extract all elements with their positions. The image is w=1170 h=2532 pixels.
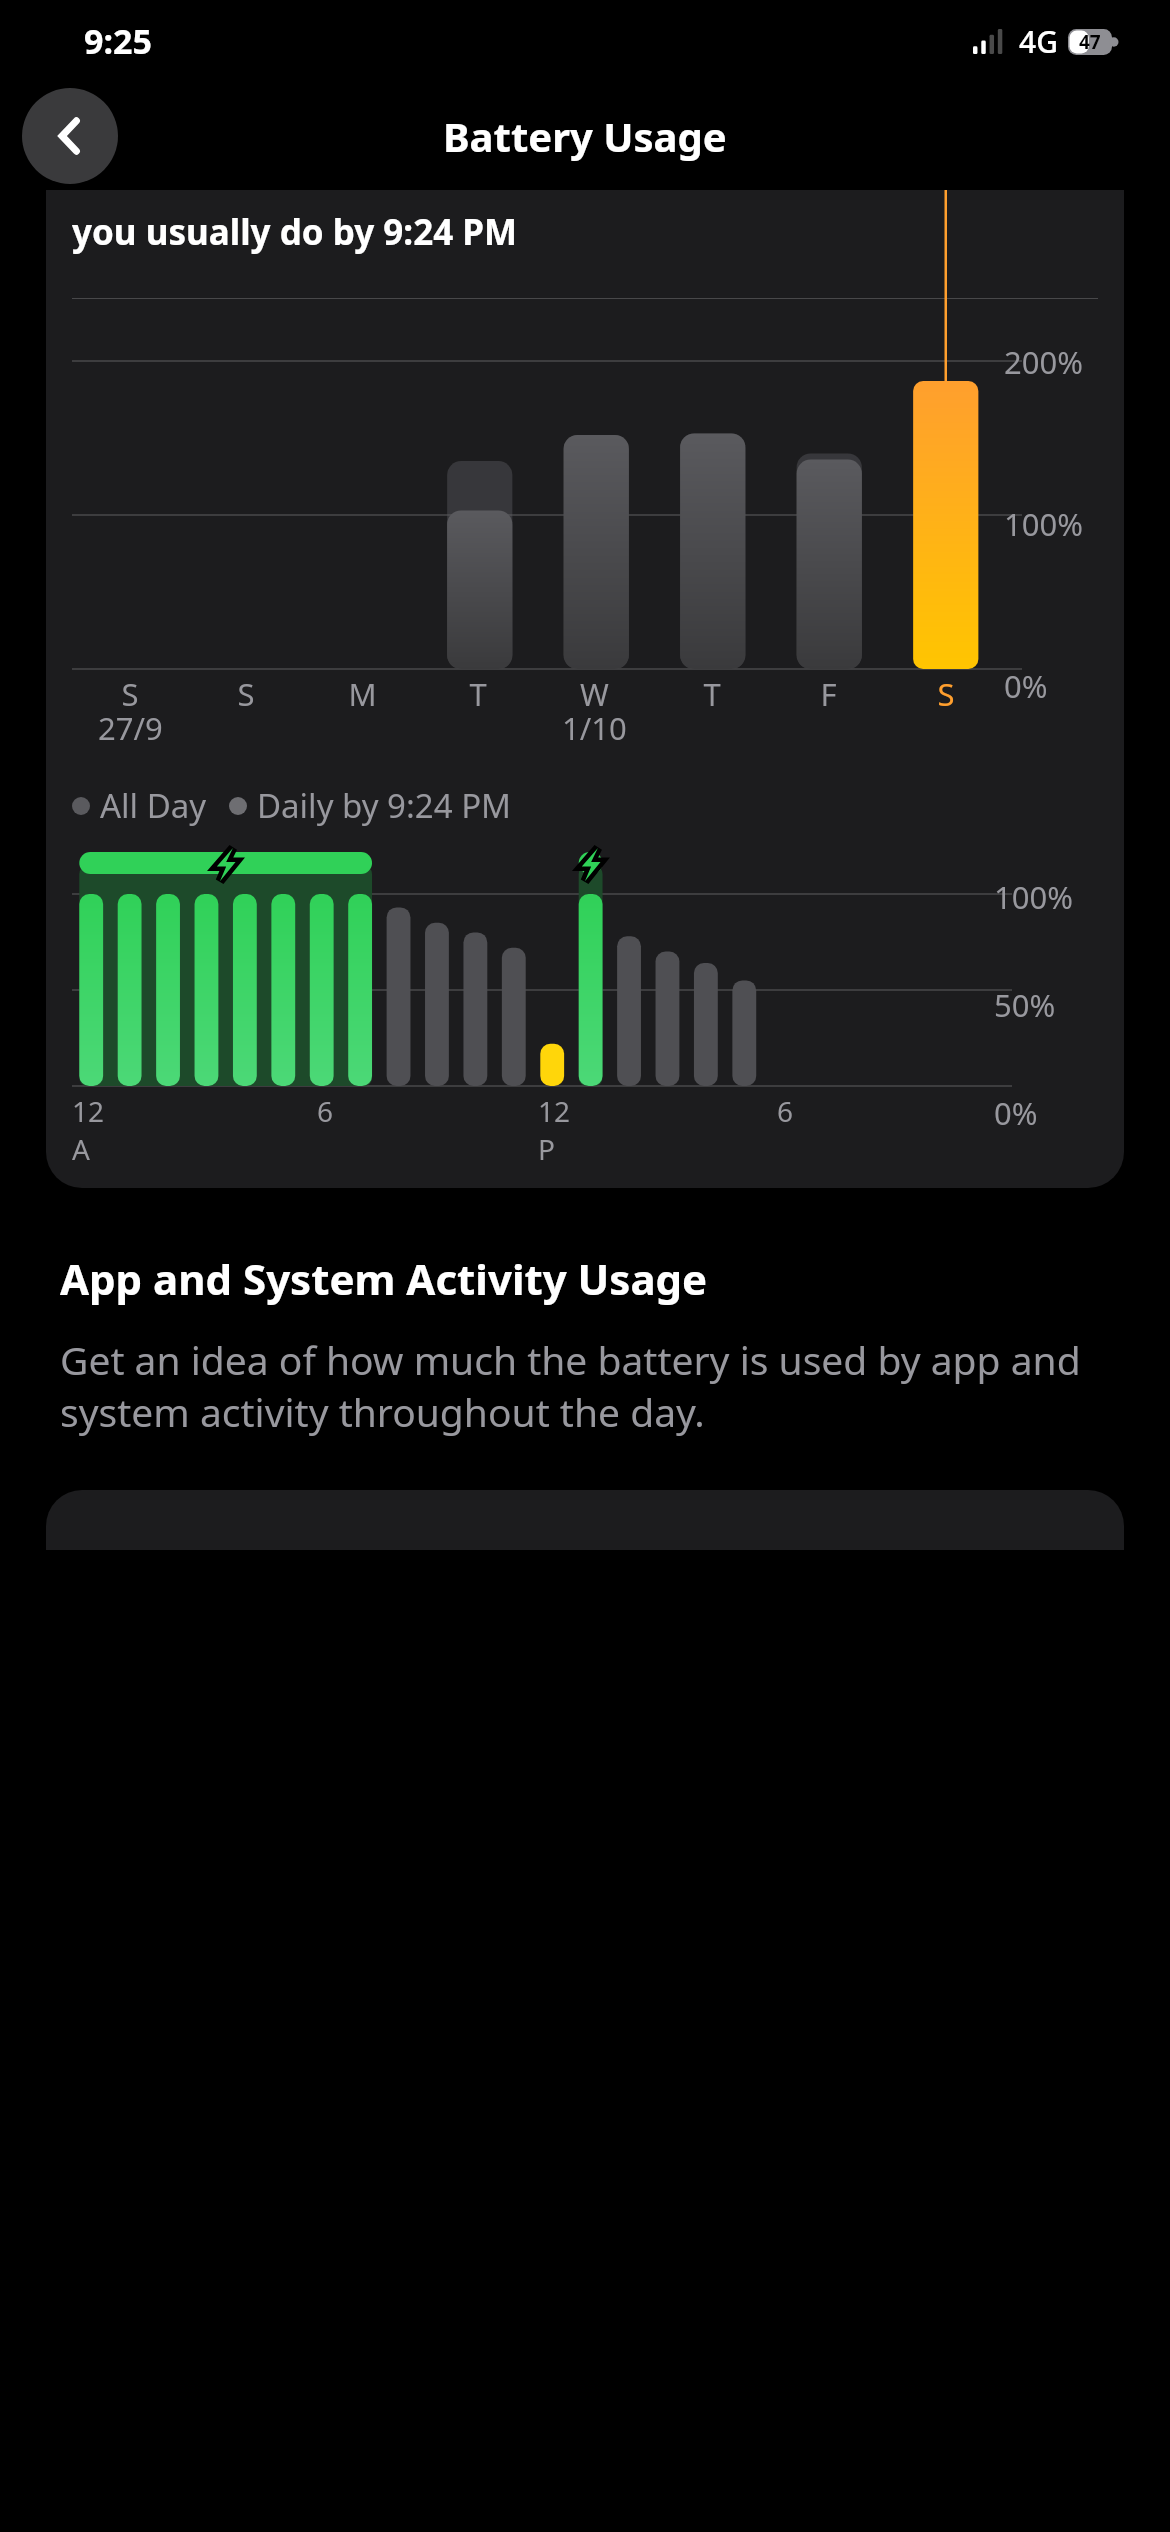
staticText: F	[820, 673, 837, 715]
staticText: 47	[1079, 29, 1101, 55]
staticText: 200%	[1004, 341, 1083, 383]
staticText: 50%	[994, 984, 1056, 1026]
staticText: 100%	[994, 876, 1073, 918]
staticText: 27/9	[98, 707, 163, 749]
staticText: S	[121, 673, 139, 715]
staticText: 100%	[1004, 503, 1083, 545]
staticText: 9:25	[84, 18, 152, 64]
staticText: S	[237, 673, 255, 715]
staticText: 6	[317, 1092, 334, 1130]
staticText: 6	[777, 1092, 794, 1130]
staticText: Get an idea of how much the battery is u…	[60, 1333, 1110, 1438]
staticText: T	[469, 673, 487, 715]
staticText: All Day	[100, 783, 207, 828]
staticText: W	[580, 673, 609, 715]
staticText: 12 P	[538, 1092, 576, 1168]
staticText: 4G	[1019, 21, 1058, 62]
button[interactable]: Back	[22, 88, 118, 184]
staticText: S	[937, 673, 955, 715]
button[interactable]: you usually do by 9:24 PM	[46, 190, 1124, 1188]
staticText: T	[703, 673, 721, 715]
staticText: Daily by 9:24 PM	[257, 783, 512, 828]
staticText: Battery Usage	[443, 109, 727, 163]
staticText: App and System Activity Usage	[60, 1250, 708, 1307]
staticText: 0%	[1004, 665, 1048, 707]
staticText: you usually do by 9:24 PM	[72, 208, 518, 256]
staticText: 1/10	[562, 707, 627, 749]
staticText: M	[348, 673, 377, 715]
staticText: 12 A	[72, 1092, 111, 1168]
staticText: 0%	[994, 1092, 1038, 1134]
